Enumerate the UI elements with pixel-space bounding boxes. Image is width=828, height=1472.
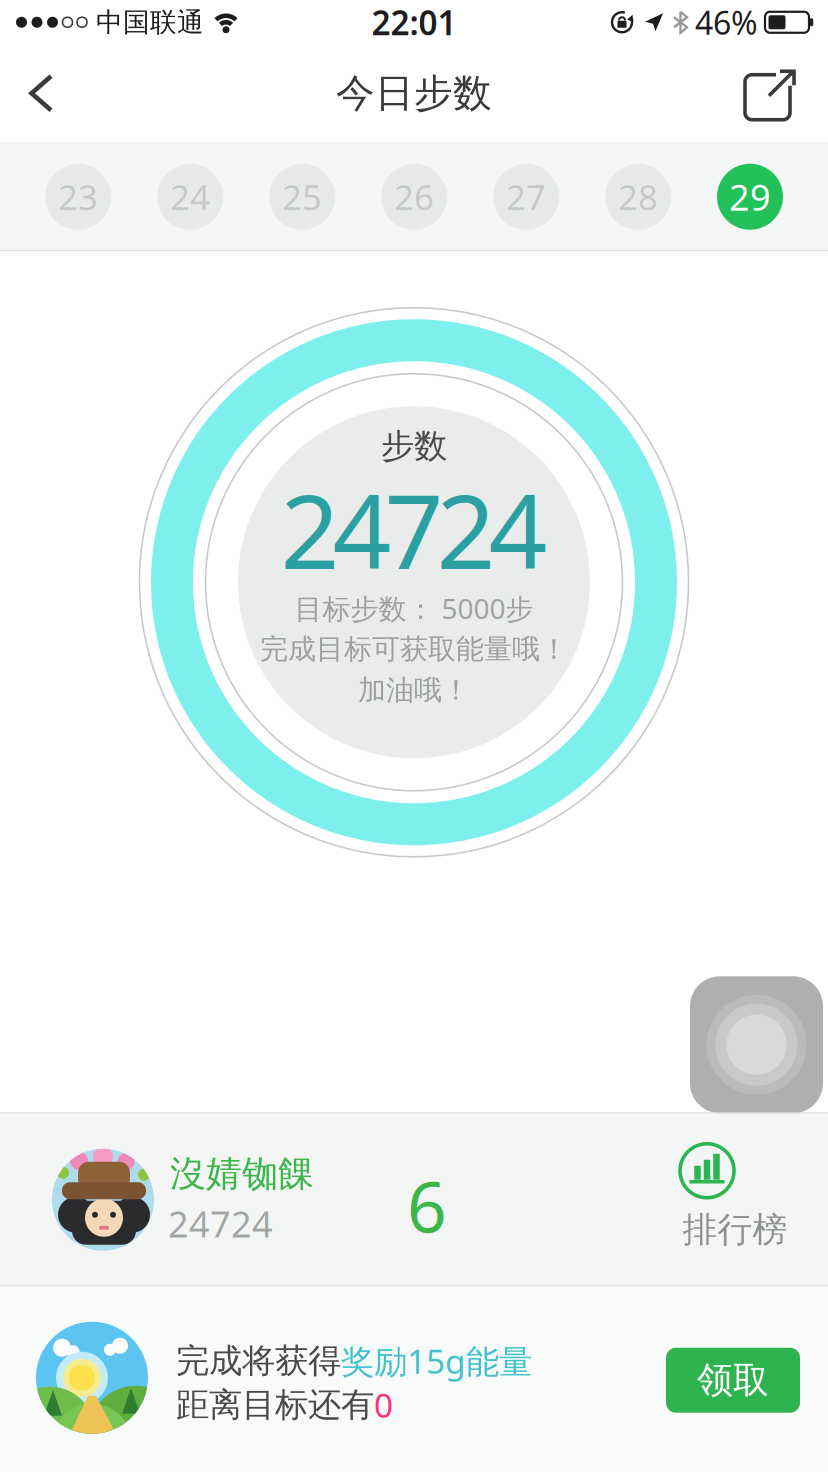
button[interactable]: 28: [605, 164, 671, 230]
staticText: 27: [506, 174, 546, 220]
staticText: 加油哦！: [358, 673, 470, 707]
staticText: 24: [170, 174, 210, 220]
button[interactable]: 26: [381, 164, 447, 230]
staticText: 6: [407, 1160, 447, 1252]
button[interactable]: [690, 976, 823, 1113]
staticText: 46%: [695, 1, 758, 43]
button[interactable]: [0, 65, 55, 121]
button[interactable]: 29: [717, 164, 783, 230]
staticText: 26: [394, 174, 434, 220]
button[interactable]: 25: [269, 164, 335, 230]
staticText: 完成目标可获取能量哦！: [260, 632, 568, 666]
staticText: 沒婧铷餜: [170, 1152, 314, 1196]
staticText: 22:01: [371, 0, 456, 44]
button[interactable]: 23: [45, 164, 111, 230]
staticText: 24724: [168, 1200, 273, 1248]
staticText: 29: [729, 173, 771, 221]
button[interactable]: [745, 67, 828, 120]
staticText: 25: [282, 174, 322, 220]
button[interactable]: 排行榜: [660, 1142, 800, 1260]
staticText: 目标步数： 5000步: [294, 590, 533, 627]
staticText: 奖励15g能量: [341, 1339, 532, 1383]
button[interactable]: 领取: [666, 1348, 800, 1413]
staticText: 领取: [697, 1358, 769, 1402]
staticText: 中国联通: [96, 6, 204, 39]
staticText: 距离目标还有: [176, 1384, 374, 1425]
staticText: 23: [58, 174, 98, 220]
staticText: 步数: [381, 426, 447, 467]
staticText: 24724: [280, 461, 547, 597]
staticText: 今日步数: [336, 69, 492, 117]
staticText: 排行榜: [682, 1208, 787, 1251]
button[interactable]: 27: [493, 164, 559, 230]
staticText: 完成将获得: [176, 1340, 341, 1381]
staticText: 0: [374, 1383, 393, 1427]
button[interactable]: 24: [157, 164, 223, 230]
staticText: 28: [618, 174, 658, 220]
